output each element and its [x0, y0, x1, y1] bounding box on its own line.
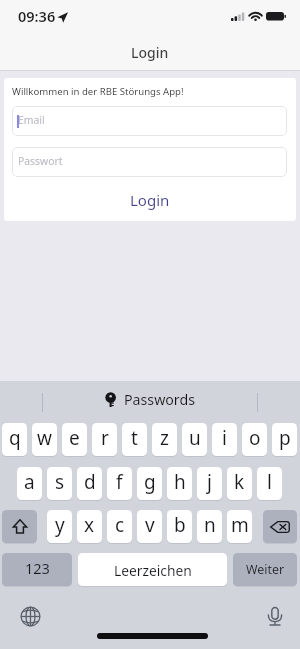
- staticText: Passwords: [124, 390, 195, 409]
- button[interactable]: r: [92, 423, 117, 457]
- staticText: o: [249, 425, 261, 451]
- button[interactable]: y: [47, 510, 72, 544]
- button[interactable]: g: [137, 467, 162, 501]
- staticText: 09:36: [18, 6, 56, 26]
- staticText: w: [37, 425, 52, 451]
- button[interactable]: Passwort: [12, 147, 287, 177]
- button[interactable]: h: [167, 467, 192, 501]
- button[interactable]: Dictation: [264, 606, 286, 628]
- button[interactable]: x: [77, 510, 102, 544]
- staticText: q: [9, 425, 21, 451]
- staticText: b: [174, 512, 186, 538]
- staticText: 123: [25, 558, 50, 578]
- staticText: Weiter: [246, 561, 285, 578]
- button[interactable]: Passwords: [105, 381, 300, 416]
- staticText: s: [55, 469, 65, 495]
- staticText: n: [204, 512, 216, 538]
- button[interactable]: 123: [2, 553, 72, 587]
- button[interactable]: Leerzeichen: [78, 553, 227, 587]
- button[interactable]: t: [122, 423, 147, 457]
- staticText: e: [69, 425, 80, 451]
- button[interactable]: b: [167, 510, 192, 544]
- button[interactable]: z: [152, 423, 177, 457]
- button[interactable]: c: [107, 510, 132, 544]
- staticText: Leerzeichen: [114, 561, 192, 580]
- button[interactable]: m: [227, 510, 252, 544]
- staticText: x: [84, 512, 95, 538]
- button[interactable]: i: [212, 423, 237, 457]
- button[interactable]: o: [242, 423, 267, 457]
- staticText: f: [116, 469, 123, 495]
- staticText: Email: [18, 113, 45, 127]
- button[interactable]: p: [272, 423, 297, 457]
- staticText: Willkommen in der RBE Störungs App!: [12, 85, 184, 98]
- staticText: Passwort: [18, 154, 63, 168]
- staticText: a: [24, 469, 35, 495]
- button[interactable]: j: [197, 467, 222, 501]
- staticText: z: [160, 425, 169, 451]
- button[interactable]: d: [77, 467, 102, 501]
- button[interactable]: w: [32, 423, 57, 457]
- staticText: Login: [130, 190, 170, 210]
- button[interactable]: Backspace: [263, 510, 297, 544]
- staticText: r: [101, 425, 109, 451]
- button[interactable]: e: [62, 423, 87, 457]
- button[interactable]: v: [137, 510, 162, 544]
- staticText: Login: [131, 43, 169, 62]
- staticText: h: [174, 469, 186, 495]
- staticText: t: [131, 425, 138, 451]
- button[interactable]: Login: [4, 185, 296, 215]
- staticText: i: [222, 425, 227, 451]
- button[interactable]: l: [257, 467, 282, 501]
- staticText: d: [84, 469, 96, 495]
- button[interactable]: Change keyboard language: [20, 606, 41, 627]
- button[interactable]: u: [182, 423, 207, 457]
- button[interactable]: n: [197, 510, 222, 544]
- staticText: m: [231, 512, 249, 538]
- staticText: k: [234, 469, 245, 495]
- staticText: j: [207, 469, 212, 495]
- staticText: v: [145, 512, 155, 538]
- button[interactable]: s: [47, 467, 72, 501]
- staticText: g: [144, 469, 156, 495]
- button[interactable]: k: [227, 467, 252, 501]
- button[interactable]: Weiter: [233, 553, 297, 587]
- button[interactable]: f: [107, 467, 132, 501]
- staticText: y: [55, 512, 65, 538]
- staticText: u: [189, 425, 201, 451]
- button[interactable]: q: [2, 423, 27, 457]
- button[interactable]: Email: [12, 106, 287, 136]
- staticText: p: [279, 425, 291, 451]
- staticText: c: [115, 512, 125, 538]
- staticText: l: [267, 469, 272, 495]
- button[interactable]: a: [17, 467, 42, 501]
- button[interactable]: Shift: [2, 510, 37, 544]
